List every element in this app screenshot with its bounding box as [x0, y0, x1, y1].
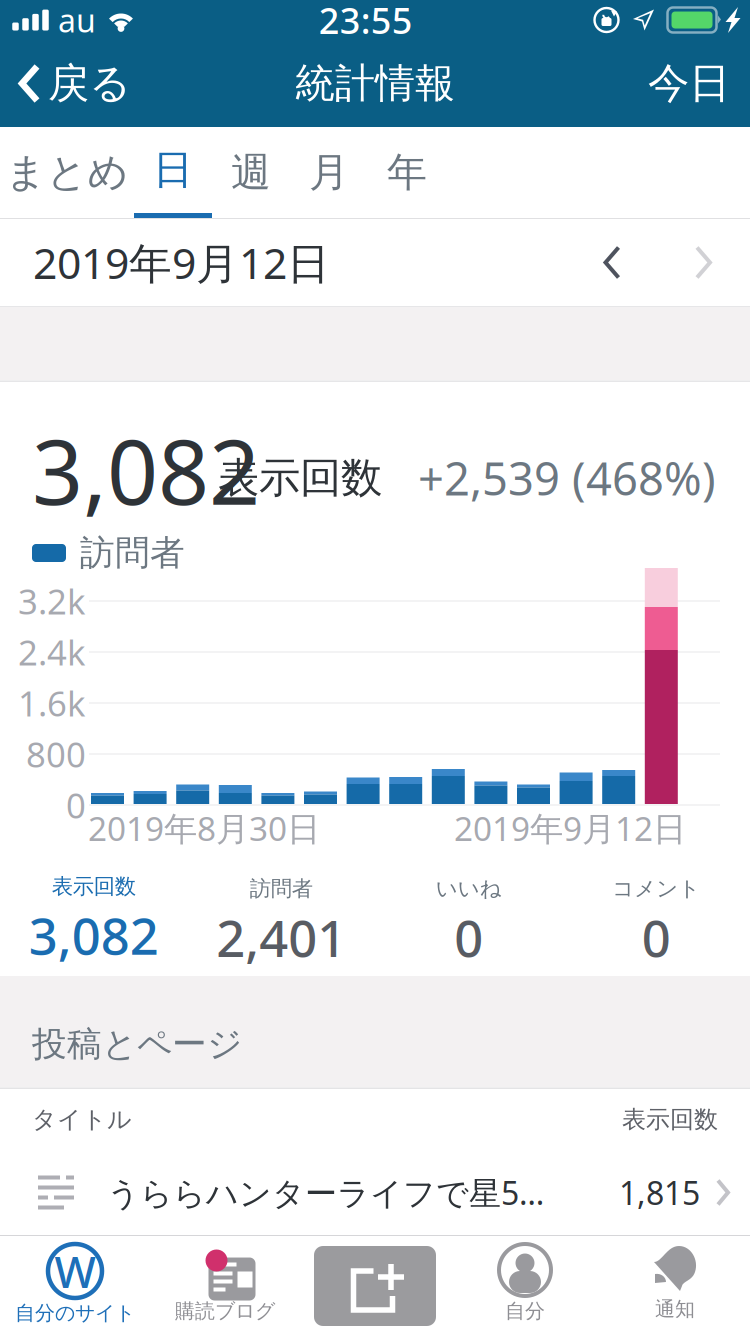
button[interactable]: 今日: [628, 40, 750, 127]
staticText: 0: [642, 904, 671, 971]
staticText: 3,082: [32, 411, 260, 529]
staticText: 0: [454, 904, 483, 971]
staticText: 訪問者: [80, 532, 185, 574]
button[interactable]: うららハンターライフで星5…: [0, 1150, 750, 1235]
button[interactable]: 新規投稿: [300, 1236, 450, 1334]
staticText: 23:55: [319, 0, 413, 44]
button[interactable]: W: [0, 1236, 150, 1334]
staticText: 2019年9月12日: [33, 234, 330, 291]
staticText: 統計情報: [295, 59, 455, 108]
staticText: タイトル: [32, 1105, 132, 1134]
button[interactable]: 週: [212, 127, 290, 218]
staticText: 戻る: [48, 58, 131, 109]
staticText: 1,815: [619, 1171, 700, 1214]
staticText: うららハンターライフで星5…: [107, 1171, 544, 1214]
staticText: 自分: [505, 1299, 545, 1323]
button[interactable]: まとめ: [0, 127, 134, 218]
staticText: 表示回数: [622, 1105, 718, 1134]
staticText: 1.6k: [18, 680, 86, 726]
staticText: 3,082: [29, 901, 159, 969]
staticText: 0: [66, 782, 86, 828]
staticText: 表示回数: [52, 873, 136, 899]
staticText: 通知: [655, 1297, 695, 1321]
staticText: 3.2k: [18, 578, 86, 624]
button[interactable]: 表示回数: [0, 860, 187, 976]
button[interactable]: 月: [290, 127, 368, 218]
staticText: コメント: [612, 875, 700, 902]
staticText: 年: [387, 148, 427, 197]
staticText: 2019年8月30日: [88, 806, 320, 850]
staticText: 自分のサイト: [15, 1301, 135, 1325]
button[interactable]: 自分: [450, 1236, 600, 1334]
button[interactable]: 年: [368, 127, 446, 218]
button[interactable]: 戻る: [0, 40, 145, 127]
button[interactable]: 訪問者: [187, 860, 375, 976]
button[interactable]: 次の日: [657, 219, 750, 306]
staticText: 表示回数: [218, 453, 382, 503]
staticText: 日: [153, 145, 193, 194]
staticText: +2,539 (468%): [418, 448, 716, 508]
staticText: 購読ブログ: [175, 1299, 275, 1323]
staticText: 今日: [648, 58, 730, 109]
button[interactable]: 購読ブログ: [150, 1236, 300, 1334]
staticText: 投稿とページ: [32, 1023, 242, 1065]
staticText: 月: [309, 148, 349, 197]
button[interactable]: 日: [134, 127, 212, 218]
button[interactable]: いいね: [375, 860, 562, 976]
staticText: au: [58, 0, 96, 41]
button[interactable]: コメント: [562, 860, 750, 976]
staticText: 2019年9月12日: [454, 806, 686, 850]
staticText: W: [54, 1242, 95, 1300]
staticText: まとめ: [5, 148, 128, 197]
staticText: 2,401: [216, 904, 346, 971]
staticText: 800: [26, 731, 86, 777]
staticText: 週: [231, 148, 271, 197]
staticText: いいね: [436, 875, 502, 902]
button[interactable]: 前の日: [567, 219, 657, 306]
staticText: 2.4k: [18, 629, 86, 675]
button[interactable]: 通知: [600, 1236, 750, 1334]
staticText: 訪問者: [250, 875, 313, 902]
